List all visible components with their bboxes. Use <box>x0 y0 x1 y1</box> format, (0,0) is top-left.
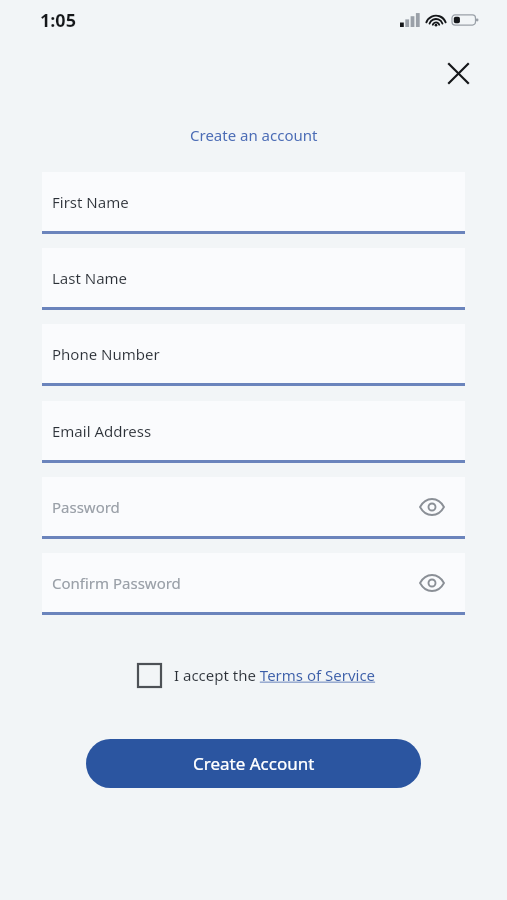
button[interactable]: Create Account <box>86 739 421 788</box>
button[interactable]: Confirm Password <box>42 553 465 615</box>
staticText: Last Name <box>52 268 128 288</box>
staticText: Email Address <box>52 421 152 441</box>
button[interactable]: Accept terms checkbox <box>132 658 166 692</box>
button[interactable]: Email Address <box>42 401 465 463</box>
staticText: Phone Number <box>52 344 160 364</box>
button[interactable]: I accept the Terms of Service <box>174 665 376 685</box>
staticText: Password <box>52 497 120 517</box>
button[interactable]: First Name <box>42 172 465 234</box>
staticText: Confirm Password <box>52 573 181 593</box>
staticText: Create Account <box>193 752 315 775</box>
button[interactable]: Show password <box>417 492 447 522</box>
button[interactable]: Show password <box>417 568 447 598</box>
staticText: I accept the Terms of Service <box>174 665 376 685</box>
staticText: First Name <box>52 192 129 212</box>
button[interactable]: Last Name <box>42 248 465 310</box>
button[interactable]: Phone Number <box>42 324 465 386</box>
staticText: 1:05 <box>40 8 76 33</box>
staticText: Create an account <box>190 125 318 145</box>
button[interactable]: Password <box>42 477 465 539</box>
button[interactable]: Close <box>435 50 481 96</box>
